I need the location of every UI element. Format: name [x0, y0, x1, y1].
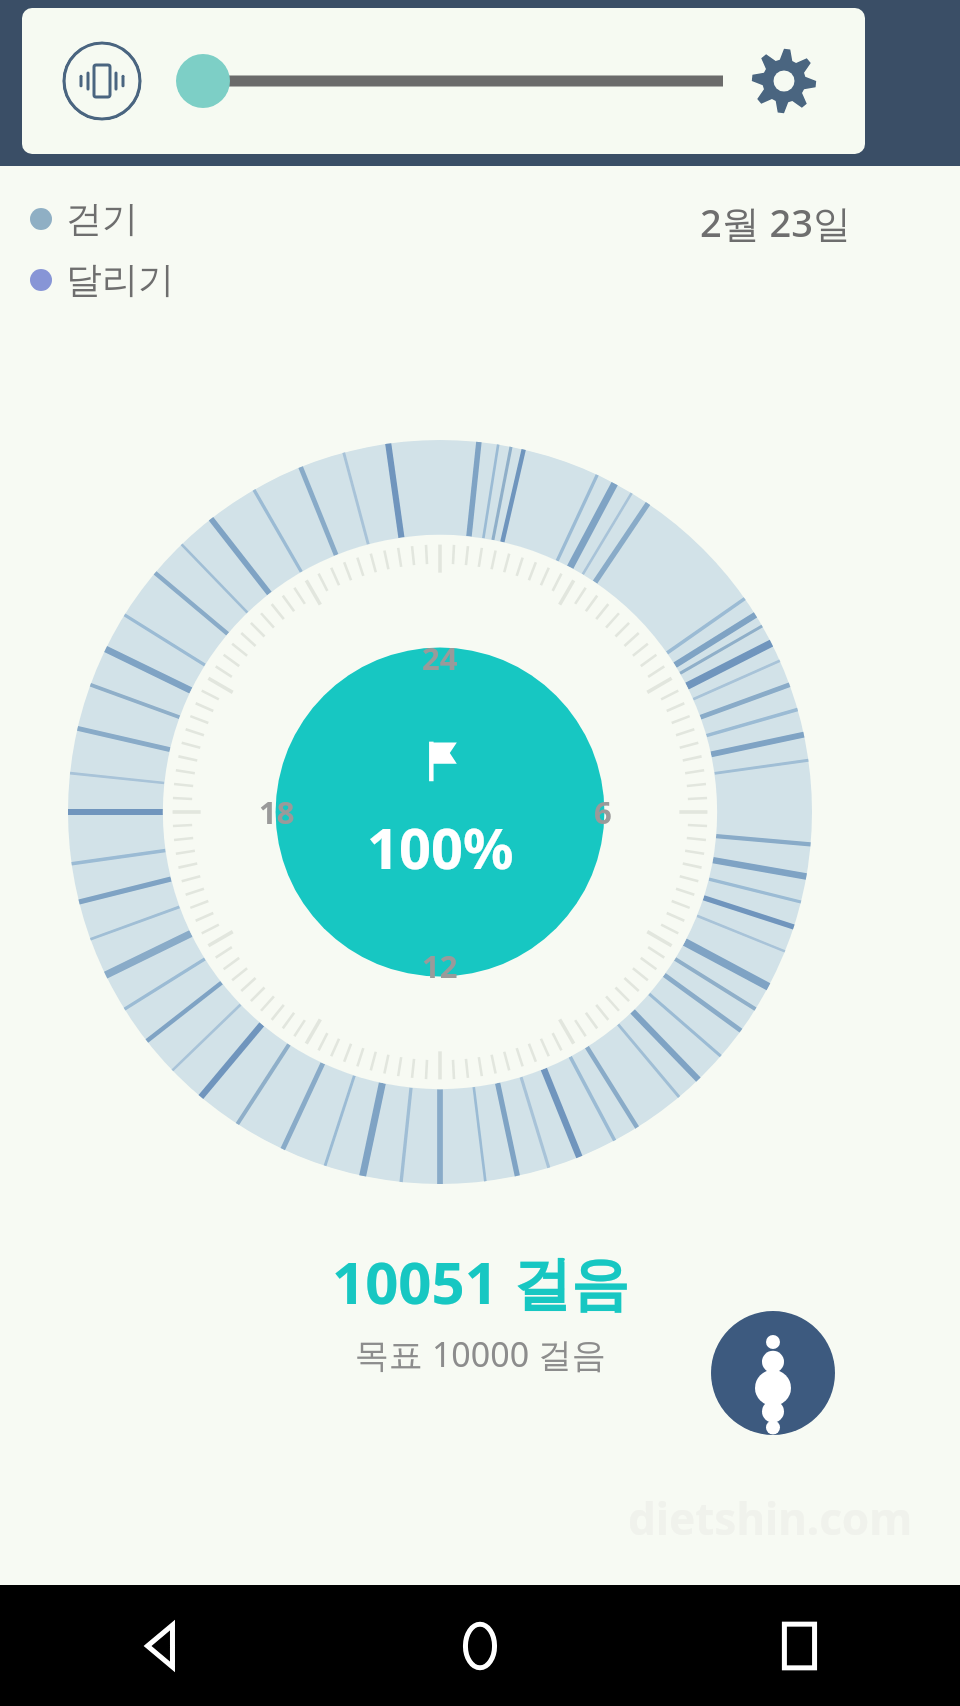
staticText: 24	[422, 637, 458, 679]
staticText: 100%	[367, 809, 514, 885]
button[interactable]: More options	[711, 1311, 835, 1435]
staticText: 12	[422, 945, 458, 987]
button[interactable]: Back	[0, 1585, 320, 1706]
staticText: 달리기	[66, 257, 174, 302]
staticText: 2월 23일	[700, 196, 852, 248]
button[interactable]: Vibrate	[62, 41, 142, 121]
staticText: 걷기	[66, 196, 138, 241]
button[interactable]: Daily activity ring	[68, 440, 812, 1184]
staticText: 목표 10000 걸음	[355, 1331, 606, 1377]
button[interactable]: Recents	[640, 1585, 960, 1706]
staticText: 6	[594, 791, 612, 833]
staticText: 10051 걸음	[332, 1242, 629, 1321]
button[interactable]: Settings	[744, 41, 824, 121]
staticText: 18	[259, 791, 295, 833]
staticText: dietshin.com	[628, 1488, 913, 1548]
button[interactable]: Volume slider	[167, 48, 727, 114]
button[interactable]: Home	[320, 1585, 640, 1706]
